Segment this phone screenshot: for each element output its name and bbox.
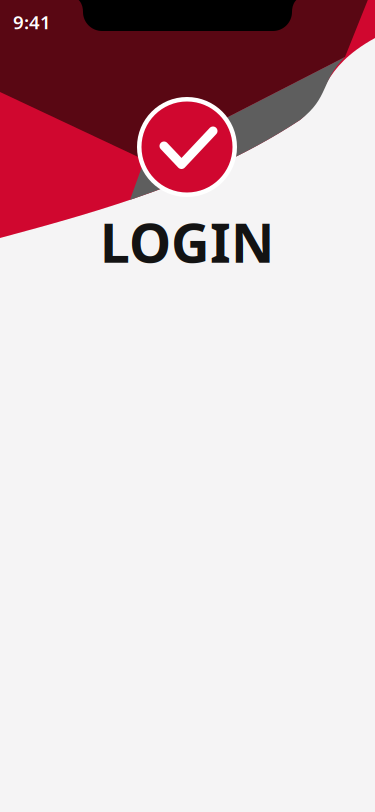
staticText: 9:41 bbox=[13, 10, 51, 34]
staticText: LOGIN bbox=[100, 207, 274, 277]
